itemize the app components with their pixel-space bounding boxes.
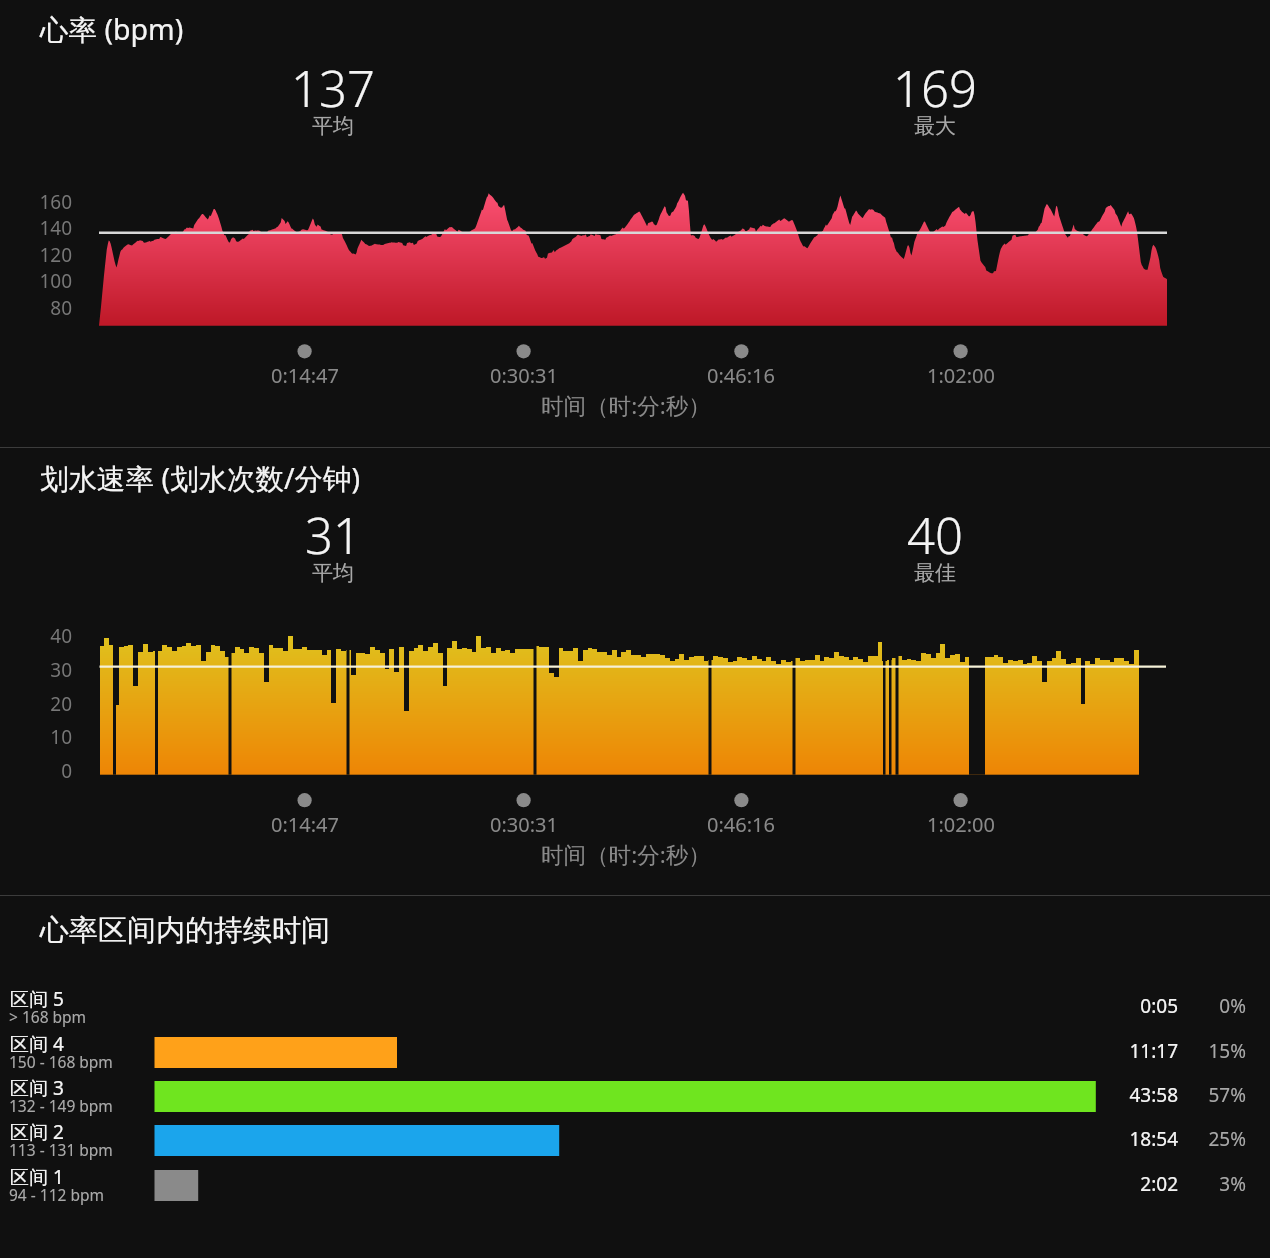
staticText: 20 xyxy=(20,691,72,717)
staticText: 0:14:47 xyxy=(235,811,375,838)
staticText: 120 xyxy=(20,242,72,268)
button[interactable]: 区间 4 xyxy=(0,1029,1270,1073)
staticText: 132 - 149 bpm xyxy=(9,1095,113,1116)
staticText: 心率区间内的持续时间 xyxy=(40,912,330,949)
staticText: 区间 1 xyxy=(10,1164,64,1190)
staticText: 169 xyxy=(840,55,1030,122)
staticText: 时间（时:分:秒） xyxy=(535,839,717,870)
staticText: 137 xyxy=(238,55,428,122)
staticText: 140 xyxy=(20,215,72,241)
staticText: 平均 xyxy=(238,560,428,586)
staticText: 心率 (bpm) xyxy=(40,10,184,49)
staticText: 80 xyxy=(20,295,72,321)
staticText: 30 xyxy=(20,657,72,683)
staticText: 11:17 xyxy=(1020,1038,1178,1064)
button[interactable]: 区间 2 xyxy=(0,1117,1270,1161)
staticText: 0% xyxy=(1128,993,1246,1019)
staticText: 0 xyxy=(20,758,72,784)
staticText: 100 xyxy=(20,268,72,294)
staticText: 160 xyxy=(20,189,72,215)
staticText: 25% xyxy=(1128,1126,1246,1152)
staticText: 平均 xyxy=(238,113,428,139)
staticText: 区间 3 xyxy=(10,1075,64,1101)
staticText: 0:46:16 xyxy=(671,811,811,838)
staticText: 1:02:00 xyxy=(891,362,1031,389)
staticText: 113 - 131 bpm xyxy=(9,1139,113,1160)
button[interactable]: 划水速率图表 xyxy=(0,448,1270,895)
staticText: 3% xyxy=(1128,1171,1246,1197)
staticText: 94 - 112 bpm xyxy=(9,1184,104,1205)
staticText: 18:54 xyxy=(1020,1126,1178,1152)
staticText: 150 - 168 bpm xyxy=(9,1051,113,1072)
staticText: 最佳 xyxy=(840,560,1030,586)
staticText: 57% xyxy=(1128,1082,1246,1108)
staticText: 0:14:47 xyxy=(235,362,375,389)
staticText: 区间 2 xyxy=(10,1119,64,1145)
staticText: 0:30:31 xyxy=(454,362,594,389)
button[interactable]: 区间 5 xyxy=(0,984,1270,1028)
staticText: 划水速率 (划水次数/分钟) xyxy=(40,459,361,498)
staticText: 最大 xyxy=(840,113,1030,139)
staticText: 时间（时:分:秒） xyxy=(535,390,717,421)
staticText: > 168 bpm xyxy=(9,1006,87,1027)
staticText: 10 xyxy=(20,724,72,750)
button[interactable]: 区间 3 xyxy=(0,1073,1270,1117)
staticText: 40 xyxy=(20,623,72,649)
staticText: 15% xyxy=(1128,1038,1246,1064)
button[interactable]: 心率 (bpm) 图表 xyxy=(0,0,1270,447)
staticText: 区间 4 xyxy=(10,1031,64,1057)
staticText: 0:46:16 xyxy=(671,362,811,389)
staticText: 40 xyxy=(840,502,1030,569)
staticText: 0:05 xyxy=(1020,993,1178,1019)
staticText: 0:30:31 xyxy=(454,811,594,838)
staticText: 1:02:00 xyxy=(891,811,1031,838)
staticText: 区间 5 xyxy=(10,986,64,1012)
staticText: 43:58 xyxy=(1020,1082,1178,1108)
button[interactable]: 区间 1 xyxy=(0,1162,1270,1206)
staticText: 31 xyxy=(238,502,428,569)
staticText: 2:02 xyxy=(1020,1171,1178,1197)
